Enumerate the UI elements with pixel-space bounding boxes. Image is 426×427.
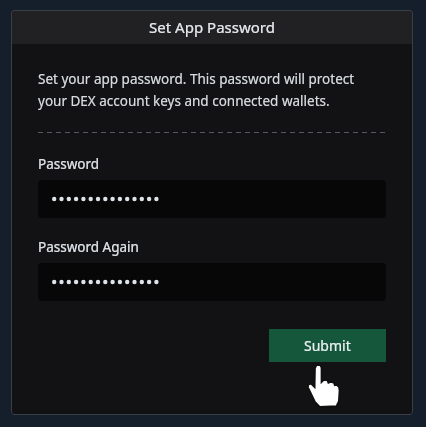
staticText: Password [38,155,100,173]
staticText: Password Again [38,238,139,256]
button[interactable]: Password Again [38,263,386,301]
button[interactable]: Submit [269,329,386,362]
staticText: Submit [304,336,351,355]
button[interactable]: Password [38,180,386,218]
staticText: Set your app password. This password wil… [38,70,386,110]
staticText: Set App Password [149,17,275,37]
